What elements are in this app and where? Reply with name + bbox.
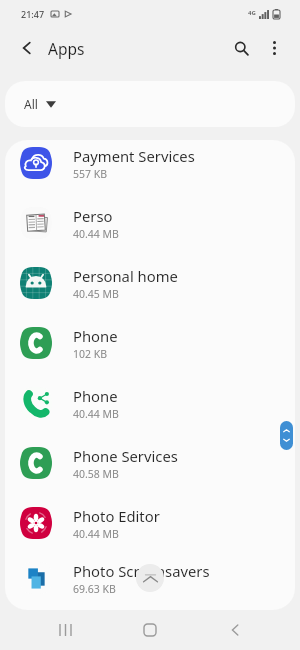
button[interactable]: Photo Editor xyxy=(5,493,295,553)
staticText: 40.58 MB xyxy=(73,467,119,481)
staticText: Perso xyxy=(73,206,113,226)
staticText: 557 KB xyxy=(73,167,108,181)
staticText: Phone xyxy=(73,326,118,346)
staticText: Payment Services xyxy=(73,146,195,166)
staticText: Phone Services xyxy=(73,446,178,466)
button[interactable]: Phone xyxy=(5,373,295,433)
button[interactable]: Photo Screensavers xyxy=(5,553,295,603)
staticText: Photo Editor xyxy=(73,506,160,526)
staticText: 40.44 MB xyxy=(73,527,119,541)
button[interactable]: Scroll to top xyxy=(136,564,164,592)
staticText: 40.44 MB xyxy=(73,407,119,421)
staticText: 69.63 KB xyxy=(73,582,116,596)
button[interactable]: Scroll xyxy=(280,421,293,450)
staticText: Phone xyxy=(73,386,118,406)
button[interactable]: Perso xyxy=(5,193,295,253)
button[interactable]: More options xyxy=(259,33,289,63)
staticText: 40.44 MB xyxy=(73,227,119,241)
button[interactable]: Phone xyxy=(5,313,295,373)
button[interactable]: Navigate up xyxy=(8,29,46,67)
staticText: 21:47 xyxy=(21,8,45,20)
staticText: Personal home xyxy=(73,266,178,286)
staticText: 102 KB xyxy=(73,347,108,361)
button[interactable]: All xyxy=(5,81,295,127)
staticText: Apps xyxy=(48,38,85,59)
staticText: 40.45 MB xyxy=(73,287,119,301)
staticText: Photo Screensavers xyxy=(73,561,210,581)
button[interactable]: Recent apps xyxy=(42,610,88,650)
staticText: All xyxy=(24,96,38,112)
button[interactable]: Phone Services xyxy=(5,433,295,493)
button[interactable]: Search xyxy=(223,30,259,66)
button[interactable]: Payment Services xyxy=(5,140,295,193)
button[interactable]: Back xyxy=(212,610,258,650)
button[interactable]: Personal home xyxy=(5,253,295,313)
staticText: 4G xyxy=(248,9,256,17)
button[interactable]: Home xyxy=(127,610,173,650)
